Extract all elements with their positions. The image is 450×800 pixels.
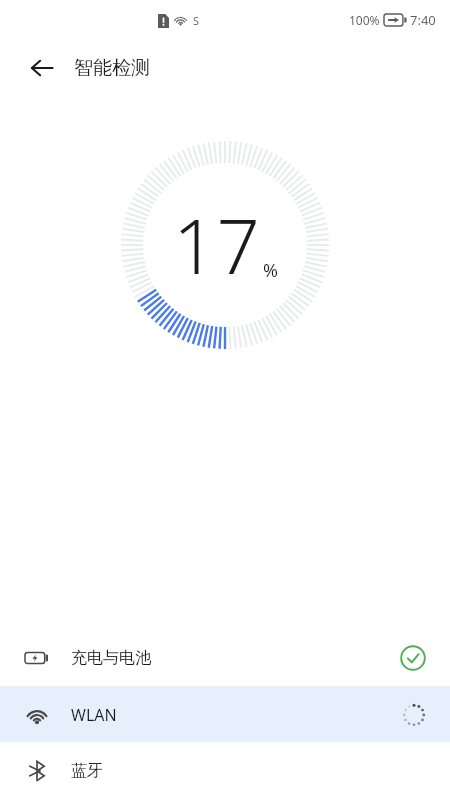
staticText: S (193, 13, 200, 28)
staticText: 17 (173, 193, 260, 297)
staticText: WLAN (71, 704, 117, 726)
staticText: 100% (349, 12, 380, 28)
staticText: 7:40 (410, 11, 436, 29)
staticText: 充电与电池 (71, 648, 151, 668)
button[interactable]: 蓝牙 (0, 742, 450, 800)
staticText: 蓝牙 (71, 761, 103, 781)
button[interactable]: WLAN (0, 687, 450, 742)
button[interactable]: 充电与电池 (0, 630, 450, 686)
staticText: 智能检测 (74, 56, 150, 80)
staticText: % (263, 258, 278, 283)
button[interactable]: Back (22, 48, 62, 88)
